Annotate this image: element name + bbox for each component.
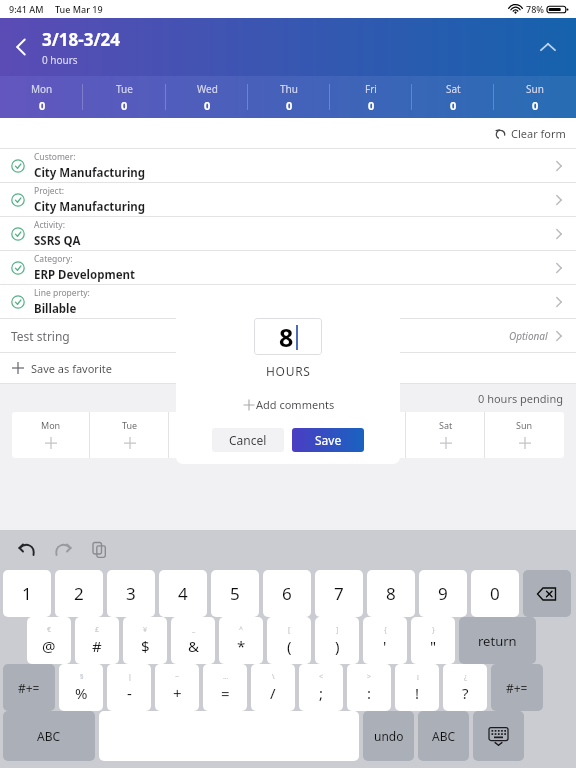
button[interactable]: 0	[471, 570, 519, 617]
button[interactable]: #+=	[3, 664, 55, 711]
staticText: 8	[386, 582, 396, 605]
button[interactable]: Project:	[0, 183, 576, 217]
button[interactable]: >	[347, 664, 391, 711]
button[interactable]: Category:	[0, 251, 576, 285]
staticText: Sun	[516, 419, 533, 431]
staticText: Thu	[279, 419, 296, 431]
staticText: 1	[22, 582, 32, 605]
staticText: 0	[450, 98, 457, 113]
button[interactable]: §	[59, 664, 103, 711]
button[interactable]: Undo	[12, 535, 42, 565]
button[interactable]: Activity:	[0, 217, 576, 251]
button[interactable]: return	[459, 617, 536, 664]
button[interactable]: Mon	[12, 412, 90, 458]
button[interactable]: ¿	[443, 664, 487, 711]
staticText: 5	[230, 582, 240, 605]
staticText: ;	[319, 683, 324, 703]
button[interactable]: ~	[155, 664, 199, 711]
button[interactable]: Backspace	[523, 570, 571, 617]
button[interactable]: 3	[107, 570, 155, 617]
button[interactable]: …	[203, 664, 247, 711]
staticText: 8	[279, 320, 294, 354]
staticText: Activity:	[34, 219, 65, 231]
staticText: 6	[282, 582, 292, 605]
button[interactable]: Sat	[412, 76, 494, 118]
staticText: 0	[286, 98, 293, 113]
staticText: <	[319, 672, 324, 682]
button[interactable]: Sun	[494, 76, 576, 118]
staticText: 0	[490, 582, 500, 605]
button[interactable]: Mon	[0, 76, 83, 118]
button[interactable]: 8	[254, 318, 322, 355]
button[interactable]: Line property:	[0, 285, 576, 319]
button[interactable]: Sun	[485, 412, 564, 458]
button[interactable]: 9	[419, 570, 467, 617]
button[interactable]: Thu	[248, 76, 330, 118]
button[interactable]: Wed	[169, 412, 248, 458]
staticText: $	[141, 636, 150, 656]
button[interactable]: Sat	[406, 412, 485, 458]
button[interactable]: 1	[3, 570, 51, 617]
button[interactable]: 6	[263, 570, 311, 617]
button[interactable]: Redo	[48, 535, 78, 565]
button[interactable]: <	[299, 664, 343, 711]
button[interactable]: ABC	[418, 711, 469, 761]
button[interactable]: Copy	[84, 535, 114, 565]
button[interactable]: Wed	[166, 76, 248, 118]
staticText: #+=	[18, 680, 40, 696]
button[interactable]: 8	[367, 570, 415, 617]
button[interactable]: ^	[219, 617, 263, 664]
button[interactable]: ]	[315, 617, 359, 664]
button[interactable]: 2	[55, 570, 103, 617]
staticText: ABC	[37, 728, 61, 744]
staticText: =	[221, 683, 230, 703]
button[interactable]: {	[363, 617, 407, 664]
button[interactable]: £	[75, 617, 119, 664]
button[interactable]: Fri	[327, 412, 406, 458]
staticText: (	[287, 636, 292, 656]
button[interactable]: Customer:	[0, 149, 576, 183]
button[interactable]: Save	[292, 428, 364, 452]
button[interactable]: _	[171, 617, 215, 664]
staticText: 2	[74, 582, 84, 605]
button[interactable]: Back	[0, 26, 42, 68]
button[interactable]: Add comments	[239, 394, 338, 415]
staticText: {	[384, 625, 387, 635]
button[interactable]: Cancel	[212, 428, 284, 452]
button[interactable]: Collapse	[526, 25, 570, 69]
button[interactable]: }	[411, 617, 455, 664]
button[interactable]: 5	[211, 570, 259, 617]
button[interactable]: Fri	[330, 76, 412, 118]
staticText: 3	[126, 582, 136, 605]
button[interactable]: Hide keyboard	[473, 711, 524, 761]
button[interactable]: Tue	[90, 412, 169, 458]
staticText: [	[288, 625, 291, 635]
button[interactable]: ¡	[395, 664, 439, 711]
button[interactable]: 4	[159, 570, 207, 617]
button[interactable]: ¥	[123, 617, 167, 664]
button[interactable]: Test string	[0, 319, 576, 353]
staticText: ¿	[464, 672, 468, 682]
button[interactable]: |	[107, 664, 151, 711]
button[interactable]: €	[27, 617, 71, 664]
button[interactable]: #+=	[491, 664, 543, 711]
other: Backspace	[534, 581, 560, 607]
staticText: &	[188, 636, 199, 656]
staticText: ]	[336, 625, 339, 635]
button[interactable]: Tue	[83, 76, 166, 118]
staticText: Mon	[31, 82, 53, 96]
button[interactable]: Save as favorite	[0, 353, 576, 383]
button[interactable]: ABC	[3, 711, 95, 761]
button[interactable]: Clear form	[484, 126, 576, 141]
staticText: Test string	[11, 328, 70, 344]
button[interactable]: 7	[315, 570, 363, 617]
staticText: return	[478, 632, 517, 650]
button[interactable]: undo	[363, 711, 414, 761]
button[interactable]: \	[251, 664, 295, 711]
button[interactable]: [	[267, 617, 311, 664]
button[interactable]: Thu	[248, 412, 327, 458]
staticText: ERP Development	[34, 267, 136, 283]
staticText: HOURS	[266, 363, 311, 379]
staticText: Tue	[122, 419, 138, 431]
